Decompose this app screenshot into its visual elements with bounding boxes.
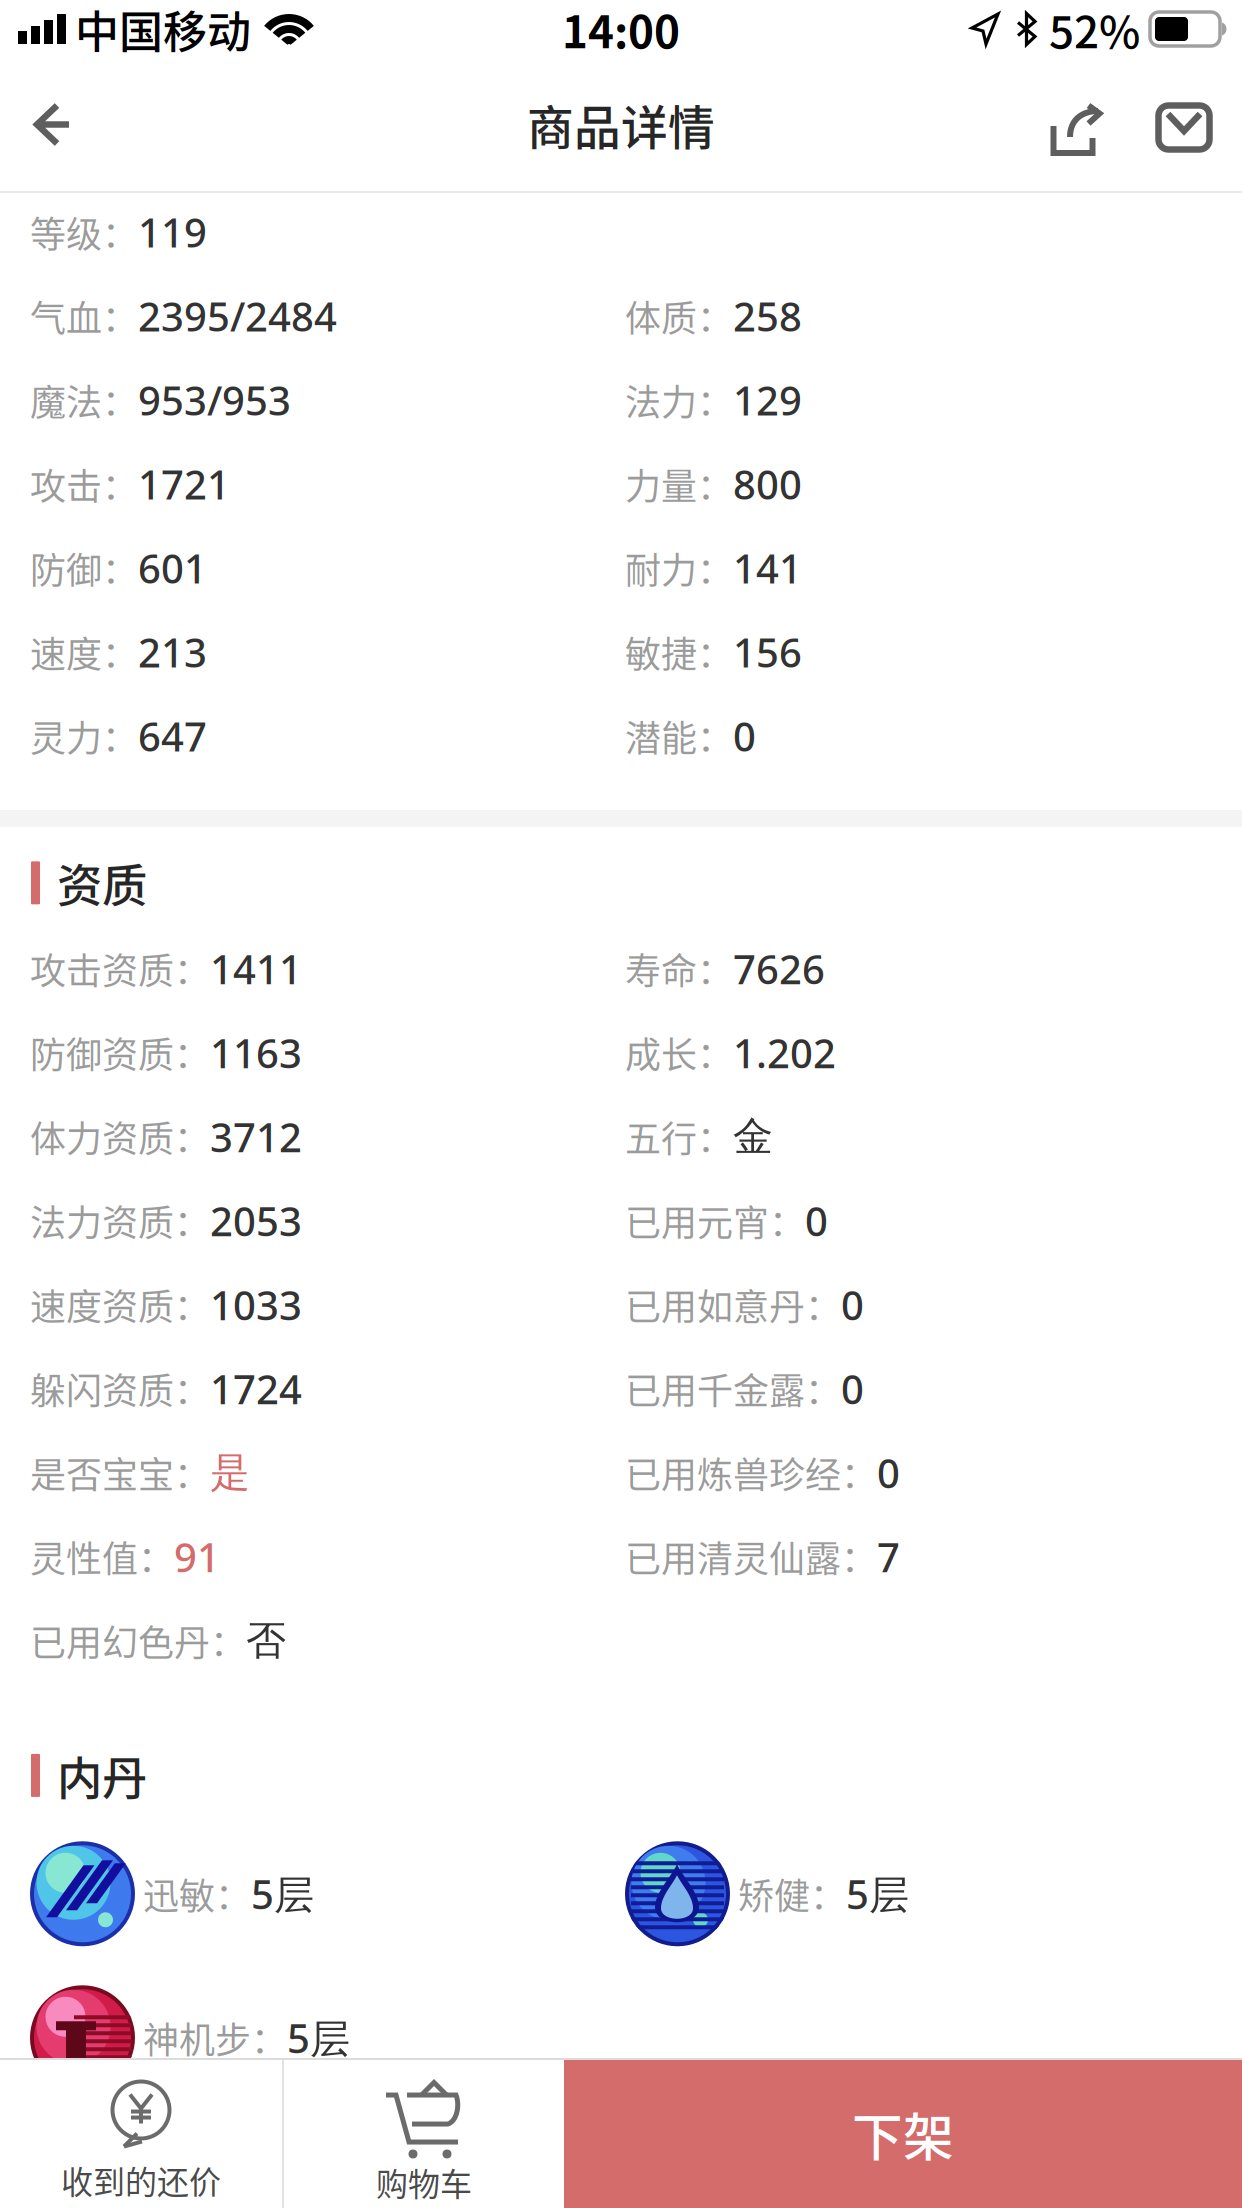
staticText: 1.202 (733, 1025, 836, 1080)
staticText: 灵性值： (30, 1531, 174, 1583)
staticText: 已用千金露： (625, 1363, 841, 1415)
staticText: 成长： (625, 1027, 733, 1079)
staticText: 141 (733, 541, 802, 595)
button[interactable]: 消息 (1129, 61, 1239, 187)
staticText: 7 (877, 1529, 900, 1584)
staticText: 等级： (30, 206, 138, 258)
staticText: 商品详情 (527, 91, 715, 158)
staticText: 力量： (625, 458, 733, 510)
staticText: 灵力： (30, 710, 138, 762)
staticText: 是 (210, 1447, 250, 1498)
staticText: 攻击： (30, 458, 138, 510)
staticText: 体力资质： (30, 1111, 210, 1163)
staticText: 防御资质： (30, 1027, 210, 1079)
staticText: 258 (733, 289, 802, 343)
staticText: 2053 (210, 1193, 302, 1248)
staticText: 防御： (30, 542, 138, 594)
staticText: 91 (174, 1529, 220, 1584)
staticText: 1411 (210, 941, 302, 996)
staticText: 1163 (210, 1025, 302, 1080)
button[interactable]: 分享 (1021, 61, 1129, 187)
staticText: 潜能： (625, 710, 733, 762)
staticText: 1724 (210, 1361, 302, 1416)
staticText: 内丹 (57, 1743, 147, 1808)
staticText: 是否宝宝： (30, 1447, 210, 1499)
staticText: 1033 (210, 1277, 302, 1332)
staticText: 5层 (287, 2010, 350, 2065)
staticText: 0 (841, 1277, 864, 1332)
staticText: 体质： (625, 290, 733, 342)
staticText: 已用如意丹： (625, 1279, 841, 1331)
staticText: 速度： (30, 626, 138, 678)
staticText: 迅敏： (143, 1868, 251, 1920)
staticText: 已用清灵仙露： (625, 1531, 877, 1583)
staticText: 敏捷： (625, 626, 733, 678)
staticText: 5层 (251, 1866, 314, 1921)
staticText: 矫健： (738, 1868, 846, 1920)
staticText: 647 (138, 709, 207, 763)
staticText: 中国移动 (75, 0, 251, 61)
staticText: 五行： (625, 1111, 733, 1163)
staticText: 156 (733, 625, 802, 679)
staticText: 法力： (625, 374, 733, 426)
staticText: 800 (733, 457, 802, 511)
button[interactable]: 收到的还价 (0, 2060, 282, 2208)
staticText: 购物车 (376, 2159, 472, 2205)
button[interactable]: 下架 (564, 2060, 1242, 2208)
staticText: 0 (805, 1193, 828, 1248)
staticText: 0 (877, 1445, 900, 1500)
staticText: 52% (1049, 0, 1140, 61)
staticText: 213 (138, 625, 207, 679)
staticText: 7626 (733, 941, 825, 996)
staticText: 119 (138, 205, 207, 259)
staticText: 魔法： (30, 374, 138, 426)
staticText: 耐力： (625, 542, 733, 594)
staticText: 0 (733, 709, 756, 763)
staticText: 神机步： (143, 2012, 287, 2064)
button[interactable]: 返回 (3, 61, 103, 187)
staticText: 否 (246, 1615, 286, 1666)
staticText: 资质 (57, 850, 147, 916)
staticText: 129 (733, 373, 802, 427)
staticText: 953/953 (138, 373, 291, 427)
staticText: 法力资质： (30, 1195, 210, 1247)
staticText: 金 (733, 1111, 773, 1162)
staticText: 2395/2484 (138, 289, 337, 343)
staticText: 14:00 (562, 0, 680, 61)
staticText: 已用炼兽珍经： (625, 1447, 877, 1499)
staticText: 已用元宵： (625, 1195, 805, 1247)
staticText: 攻击资质： (30, 943, 210, 995)
staticText: 收到的还价 (61, 2157, 221, 2203)
staticText: 5层 (846, 1866, 909, 1921)
staticText: 601 (138, 541, 207, 595)
staticText: 已用幻色丹： (30, 1615, 246, 1667)
staticText: 寿命： (625, 943, 733, 995)
staticText: 1721 (138, 457, 230, 511)
staticText: 躲闪资质： (30, 1363, 210, 1415)
staticText: 3712 (210, 1109, 302, 1164)
staticText: 0 (841, 1361, 864, 1416)
button[interactable]: 购物车 (284, 2060, 564, 2208)
staticText: 气血： (30, 290, 138, 342)
staticText: 速度资质： (30, 1279, 210, 1331)
staticText: 下架 (852, 2097, 954, 2171)
